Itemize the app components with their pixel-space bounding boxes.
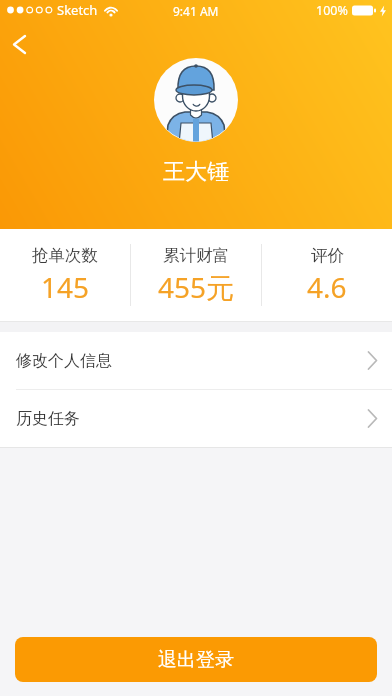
button[interactable]: 修改个人信息 [0,332,392,389]
staticText: 王大锤 [163,158,229,186]
button[interactable]: 累计财富 [131,229,261,321]
button[interactable]: 历史任务 [0,390,392,447]
staticText: 455元 [158,268,235,306]
staticText: 抢单次数 [32,245,98,266]
button[interactable] [6,28,36,60]
staticText: 145 [41,268,90,306]
button[interactable]: 评价 [262,229,392,321]
button[interactable]: 抢单次数 [0,229,130,321]
staticText: 4.6 [307,268,347,306]
staticText: 评价 [311,245,344,266]
staticText: 修改个人信息 [16,351,112,371]
staticText: 历史任务 [16,409,80,429]
staticText: 100% [316,2,348,19]
staticText: 退出登录 [158,648,234,672]
staticText: 累计财富 [163,245,229,266]
staticText: 9:41 AM [173,3,219,19]
staticText: Sketch [57,1,98,19]
button[interactable]: 退出登录 [15,637,377,682]
